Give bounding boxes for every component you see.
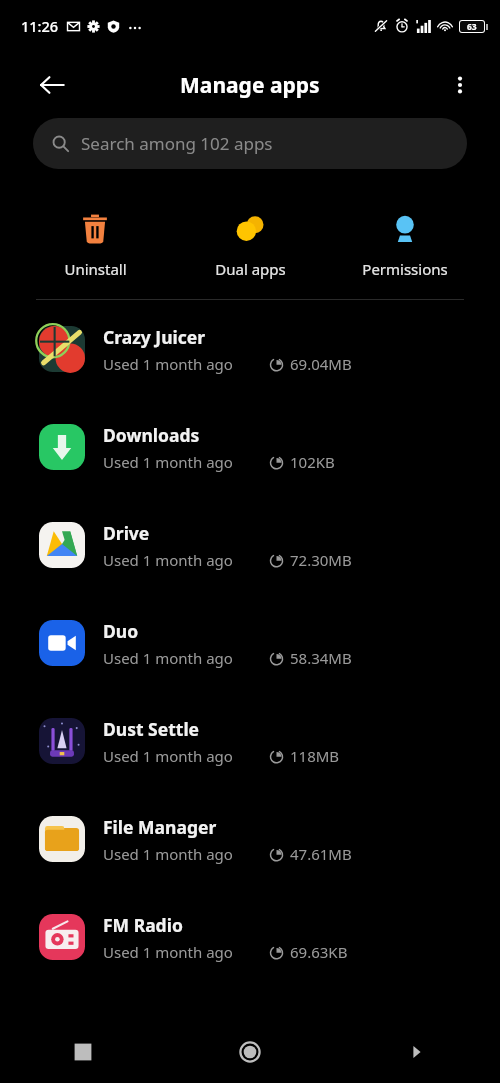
button[interactable]: Search among 102 apps xyxy=(33,118,467,169)
button[interactable]: Back xyxy=(333,1020,500,1083)
staticText: Used 1 month ago xyxy=(103,452,233,472)
button[interactable]: Dual apps xyxy=(190,209,310,281)
button[interactable]: Uninstall xyxy=(35,209,155,281)
staticText: 72.30MB xyxy=(290,550,352,570)
staticText: Used 1 month ago xyxy=(103,942,233,962)
staticText: File Manager xyxy=(103,815,217,839)
staticText: FM Radio xyxy=(103,913,183,937)
staticText: Used 1 month ago xyxy=(103,844,233,864)
staticText: 118MB xyxy=(290,746,340,766)
staticText: Drive xyxy=(103,521,150,545)
button[interactable]: Permissions xyxy=(345,209,465,281)
button[interactable]: Duo xyxy=(0,594,500,692)
button[interactable]: Dust Settle xyxy=(0,692,500,790)
button[interactable]: Back xyxy=(28,61,76,109)
staticText: Crazy Juicer xyxy=(103,325,206,349)
staticText: 102KB xyxy=(290,452,335,472)
staticText: 11:26 xyxy=(21,16,59,36)
staticText: Used 1 month ago xyxy=(103,648,233,668)
button[interactable]: Drive xyxy=(0,496,500,594)
button[interactable]: FM Radio xyxy=(0,888,500,986)
staticText: 69.04MB xyxy=(290,354,352,374)
staticText: Used 1 month ago xyxy=(103,550,233,570)
staticText: 69.63KB xyxy=(290,942,348,962)
staticText: 47.61MB xyxy=(290,844,352,864)
button[interactable]: Crazy Juicer xyxy=(0,300,500,398)
button[interactable]: File Manager xyxy=(0,790,500,888)
staticText: Dual apps xyxy=(215,259,286,279)
staticText: 58.34MB xyxy=(290,648,352,668)
staticText: Uninstall xyxy=(64,259,127,279)
staticText: Downloads xyxy=(103,423,200,447)
staticText: Duo xyxy=(103,619,139,643)
staticText: Manage apps xyxy=(180,71,320,100)
staticText: Used 1 month ago xyxy=(103,354,233,374)
staticText: Used 1 month ago xyxy=(103,746,233,766)
staticText: 63 xyxy=(467,21,477,32)
staticText: Search among 102 apps xyxy=(81,132,273,155)
staticText: Permissions xyxy=(362,259,448,279)
button[interactable]: Home xyxy=(166,1020,333,1083)
button[interactable]: More options xyxy=(438,63,482,107)
staticText: Dust Settle xyxy=(103,717,200,741)
button[interactable]: Downloads xyxy=(0,398,500,496)
button[interactable]: Recent apps xyxy=(0,1020,166,1083)
